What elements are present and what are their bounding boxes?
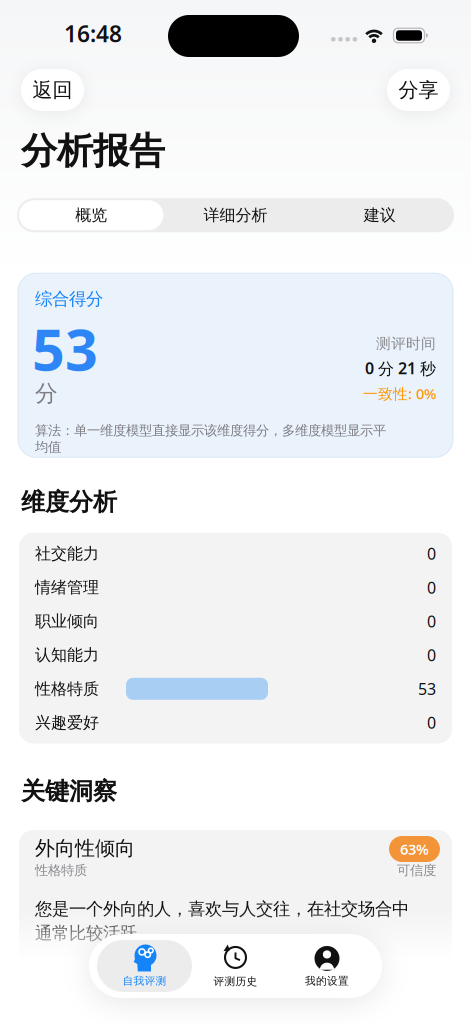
staticText: 性格特质 [35, 679, 99, 699]
staticText: 认知能力 [35, 645, 99, 665]
staticText: 情绪管理 [35, 578, 99, 597]
button[interactable]: 概览 [19, 200, 163, 230]
staticText: 维度分析 [21, 487, 117, 517]
staticText: 0 [427, 543, 436, 564]
staticText: 性格特质 [35, 862, 87, 878]
staticText: 测评时间 [376, 334, 436, 352]
staticText: 社交能力 [35, 544, 99, 563]
staticText: 可信度 [397, 862, 436, 878]
staticText: 分 [35, 380, 58, 407]
staticText: 0 [427, 712, 436, 733]
staticText: 分享 [398, 78, 438, 102]
staticText: 返回 [32, 78, 72, 102]
button[interactable]: 自我评测 [97, 940, 192, 992]
button[interactable]: 分享 [387, 69, 450, 111]
staticText: 16:48 [64, 18, 122, 49]
staticText: 0 [427, 611, 436, 632]
staticText: 详细分析 [203, 205, 267, 225]
button[interactable]: 我的设置 [305, 944, 349, 987]
button[interactable]: 评测历史 [213, 944, 257, 988]
staticText: 一致性: 0% [363, 384, 436, 403]
button[interactable]: 返回 [21, 69, 84, 111]
staticText: 兴趣爱好 [35, 713, 99, 732]
button[interactable]: 建议 [308, 200, 452, 230]
staticText: 63% [400, 839, 429, 859]
staticText: 综合得分 [35, 288, 103, 309]
staticText: 您是一个外向的人，喜欢与人交往，在社交场合中 通常比较活跃 [35, 898, 409, 944]
staticText: 职业倾向 [35, 611, 99, 631]
staticText: 外向性倾向 [35, 836, 135, 861]
staticText: 0 [427, 644, 436, 666]
button[interactable]: 详细分析 [163, 200, 308, 230]
staticText: 建议 [364, 205, 396, 225]
staticText: 53 [32, 310, 98, 387]
staticText: 0 [427, 577, 436, 598]
staticText: 0 分 21 秒 [365, 357, 436, 379]
staticText: 53 [418, 678, 436, 699]
staticText: 关键洞察 [21, 776, 117, 806]
staticText: 分析报告 [21, 129, 165, 173]
staticText: 算法：单一维度模型直接显示该维度得分，多维度模型显示平 均值 [35, 422, 386, 455]
staticText: 概览 [75, 205, 107, 225]
staticText: 评测历史 [213, 975, 257, 988]
staticText: 我的设置 [305, 974, 349, 987]
staticText: 自我评测 [122, 974, 166, 987]
